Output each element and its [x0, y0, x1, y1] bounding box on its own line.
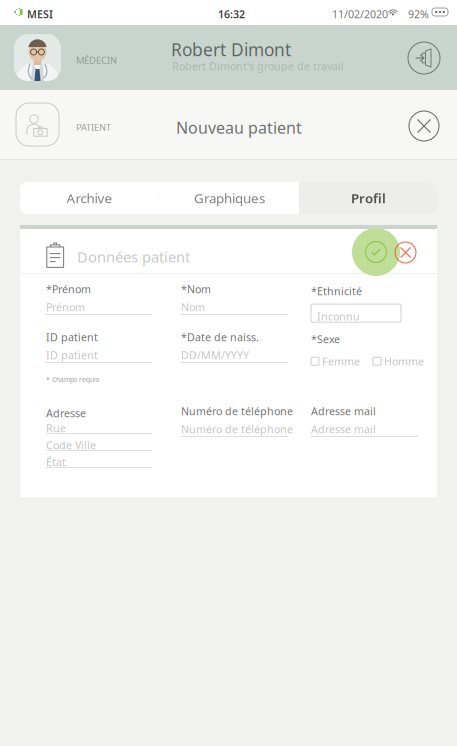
staticText: 11/02/2020	[332, 7, 388, 21]
button[interactable]: Valider	[352, 228, 400, 276]
button[interactable]: Profil	[300, 182, 437, 214]
button[interactable]: Femme	[311, 354, 360, 368]
staticText: MESI	[27, 7, 53, 21]
staticText: ID patient	[46, 348, 98, 362]
staticText: Code	[46, 438, 72, 452]
staticText: Profil	[351, 189, 386, 207]
button[interactable]: Homme	[373, 354, 424, 368]
staticText: Femme	[322, 354, 360, 368]
staticText: Inconnu	[317, 309, 360, 323]
button[interactable]: Annuler	[395, 242, 416, 263]
staticText: *Sexe	[311, 332, 340, 346]
button[interactable]: Graphiques	[160, 182, 299, 214]
staticText: Numéro de téléphone	[181, 404, 293, 418]
button[interactable]: *Prénom	[46, 284, 152, 315]
staticText: *Nom	[181, 282, 211, 296]
staticText: PATIENT	[76, 121, 111, 133]
staticText: Numéro de téléphone	[181, 422, 293, 436]
staticText: Adresse mail	[311, 422, 376, 436]
staticText: Nom	[181, 300, 205, 314]
button[interactable]: Se déconnecter	[408, 42, 440, 74]
staticText: *Prénom	[46, 282, 91, 296]
staticText: 16:32	[218, 7, 245, 21]
staticText: *Date de naiss.	[181, 330, 259, 344]
button[interactable]: *Nom	[181, 284, 288, 315]
button[interactable]: ID patient	[46, 332, 152, 363]
staticText: Prénom	[46, 300, 85, 314]
staticText: *Ethnicité	[311, 284, 362, 298]
button[interactable]: Fermer	[409, 111, 439, 141]
staticText: Archive	[66, 189, 112, 207]
staticText: Robert Dimont	[171, 38, 291, 61]
staticText: Graphiques	[194, 189, 265, 207]
button[interactable]: *Date de naiss.	[181, 332, 288, 363]
staticText: MÉDECIN	[76, 54, 117, 66]
staticText: Données patient	[77, 247, 190, 266]
staticText: État	[46, 455, 66, 469]
staticText: ID patient	[46, 330, 98, 344]
staticText: Adresse	[46, 406, 86, 420]
staticText: 92%	[408, 7, 429, 21]
button[interactable]: Rue	[46, 421, 152, 469]
staticText: Rue	[46, 421, 66, 435]
staticText: * Champs requis	[46, 375, 99, 384]
staticText: Nouveau patient	[176, 117, 302, 138]
staticText: Adresse mail	[311, 404, 376, 418]
button[interactable]: Adresse mail	[311, 406, 418, 437]
staticText: Robert Dimont's groupe de travail	[172, 59, 344, 73]
button[interactable]: *Ethnicité	[311, 284, 401, 322]
button[interactable]: Archive	[20, 182, 159, 214]
staticText: Ville	[75, 438, 96, 452]
staticText: DD/MM/YYYY	[181, 348, 249, 362]
button[interactable]: Numéro de téléphone	[181, 406, 301, 437]
staticText: Homme	[384, 354, 424, 368]
